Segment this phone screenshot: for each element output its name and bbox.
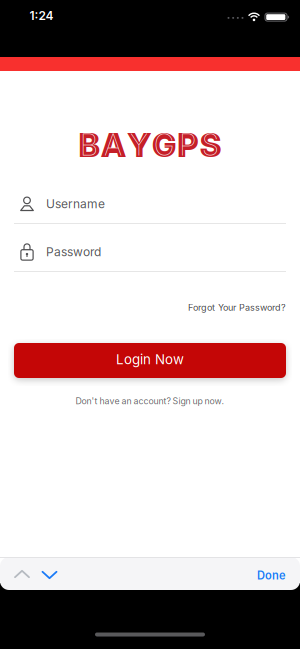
staticText: Login Now xyxy=(116,351,184,367)
staticText: Done xyxy=(257,569,286,582)
staticText: Y xyxy=(130,128,148,162)
staticText: P xyxy=(179,128,196,162)
button[interactable]: Forgot Your Password? xyxy=(188,302,286,313)
staticText: P xyxy=(177,125,198,165)
staticText: S xyxy=(199,125,221,165)
button[interactable]: Password xyxy=(14,235,286,269)
button[interactable]: Next field xyxy=(38,565,60,585)
button[interactable]: Don't have an account? Sign up now. xyxy=(75,396,224,406)
staticText: Username xyxy=(46,197,105,211)
button[interactable]: Login Now xyxy=(14,343,286,378)
staticText: A xyxy=(104,128,122,162)
staticText: 1:24 xyxy=(29,8,53,23)
button[interactable]: Previous field xyxy=(11,564,33,584)
staticText: G xyxy=(152,125,176,165)
staticText: Don't have an account? Sign up now. xyxy=(75,396,224,406)
staticText: B xyxy=(78,125,99,165)
staticText: Y xyxy=(127,125,151,165)
button[interactable]: Username xyxy=(14,187,286,221)
button[interactable]: Done xyxy=(257,569,286,582)
staticText: Forgot Your Password? xyxy=(188,302,286,313)
staticText: A xyxy=(101,125,126,165)
staticText: S xyxy=(202,128,219,162)
staticText: B xyxy=(80,128,98,162)
staticText: Password xyxy=(46,245,101,259)
staticText: G xyxy=(154,128,174,162)
